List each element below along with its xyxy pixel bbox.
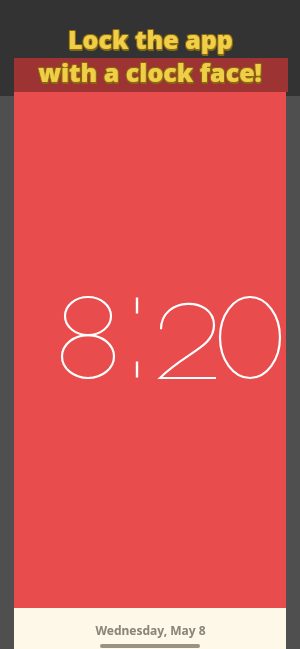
staticText: with a clock face! bbox=[38, 54, 262, 86]
staticText: with a clock face! bbox=[38, 56, 262, 88]
staticText: with a clock face! bbox=[39, 54, 263, 86]
staticText: Lock the app bbox=[67, 23, 232, 55]
staticText: Lock the app bbox=[67, 21, 232, 53]
staticText: Lock the app bbox=[69, 24, 234, 56]
staticText: with a clock face! bbox=[37, 55, 261, 87]
staticText: Lock the app bbox=[68, 23, 233, 55]
staticText: Lock the app bbox=[69, 21, 234, 53]
staticText: with a clock face! bbox=[38, 55, 262, 87]
staticText: Wednesday, May 8 bbox=[95, 622, 206, 638]
staticText: Lock the app bbox=[67, 22, 232, 54]
staticText: with a clock face! bbox=[37, 56, 261, 88]
staticText: Lock the app bbox=[69, 23, 234, 55]
staticText: Lock the app bbox=[68, 24, 233, 56]
staticText: Lock the app bbox=[68, 21, 233, 53]
staticText: with a clock face! bbox=[39, 56, 263, 88]
staticText: with a clock face! bbox=[38, 57, 262, 89]
button[interactable]: Home indicator bbox=[100, 644, 200, 648]
staticText: with a clock face! bbox=[39, 55, 263, 87]
staticText: Lock the app bbox=[68, 22, 233, 54]
staticText: with a clock face! bbox=[37, 54, 261, 86]
button[interactable]: Clock face 8:20 bbox=[14, 92, 286, 608]
staticText: Lock the app bbox=[69, 22, 234, 54]
staticText: with a clock face! bbox=[39, 57, 263, 89]
